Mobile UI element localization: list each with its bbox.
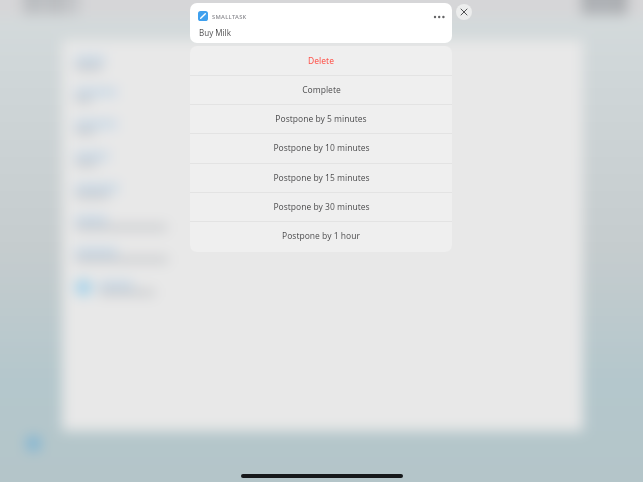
button[interactable]: Postpone by 10 minutes: [190, 133, 452, 162]
staticText: Complete: [302, 84, 341, 96]
staticText: Buy Milk: [199, 27, 231, 38]
button[interactable]: SMALLTASK: [190, 3, 452, 43]
button[interactable]: Close: [456, 4, 472, 20]
button[interactable]: Delete: [190, 46, 452, 75]
button[interactable]: Postpone by 30 minutes: [190, 192, 452, 221]
staticText: Postpone by 10 minutes: [273, 142, 370, 154]
staticText: Postpone by 30 minutes: [273, 201, 370, 213]
button[interactable]: Complete: [190, 75, 452, 104]
staticText: Delete: [308, 55, 334, 67]
staticText: Postpone by 5 minutes: [275, 113, 367, 125]
staticText: SMALLTASK: [212, 13, 247, 21]
staticText: Postpone by 15 minutes: [273, 172, 370, 184]
button[interactable]: Postpone by 1 hour: [190, 221, 452, 250]
staticText: Postpone by 1 hour: [282, 230, 360, 242]
button[interactable]: Postpone by 5 minutes: [190, 104, 452, 133]
button[interactable]: Postpone by 15 minutes: [190, 163, 452, 192]
